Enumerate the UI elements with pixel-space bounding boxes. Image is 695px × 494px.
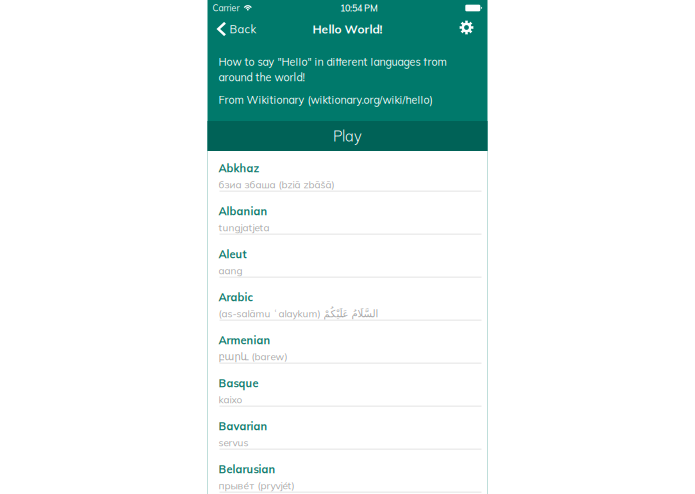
button[interactable]: Arabic — [207, 280, 487, 323]
staticText: tungjatjeta — [218, 221, 269, 234]
button[interactable]: Albanian — [207, 194, 487, 237]
staticText: Carrier — [212, 3, 239, 13]
staticText: Basque — [218, 376, 258, 390]
button[interactable]: Settings — [449, 18, 487, 40]
staticText: kaixo — [218, 393, 242, 406]
staticText: servus — [218, 436, 248, 449]
staticText: Hello World! — [312, 22, 382, 36]
staticText: Back — [229, 22, 256, 36]
staticText: Arabic — [218, 290, 253, 304]
button[interactable]: Belarusian — [207, 452, 487, 494]
button[interactable]: Armenian — [207, 323, 487, 366]
staticText: Play — [333, 127, 362, 145]
staticText: aang — [218, 264, 242, 277]
button[interactable]: Basque — [207, 366, 487, 409]
staticText: прыве́т (pryvjét) — [218, 479, 294, 492]
staticText: бзиа збаша (bziā zbāšā) — [218, 178, 334, 191]
button[interactable]: Back — [207, 18, 265, 40]
button[interactable]: Bavarian — [207, 409, 487, 452]
button[interactable]: Aleut — [207, 237, 487, 280]
staticText: բարև (barew) — [218, 350, 287, 363]
staticText: From Wikitionary (wiktionary.org/wiki/he… — [218, 93, 432, 106]
staticText: How to say "Hello" in different language… — [218, 55, 446, 84]
staticText: Abkhaz — [218, 161, 259, 175]
staticText: Albanian — [218, 204, 267, 218]
staticText: Aleut — [218, 247, 246, 261]
button[interactable]: Play — [207, 121, 487, 151]
staticText: 10:54 PM — [340, 2, 378, 14]
button[interactable]: Abkhaz — [207, 151, 487, 194]
staticText: Bavarian — [218, 419, 267, 433]
staticText: Belarusian — [218, 462, 275, 476]
staticText: Armenian — [218, 333, 270, 347]
staticText: (as-salāmu ʿalaykum) السَّلَامُ عَلَيْكُ… — [218, 307, 378, 320]
